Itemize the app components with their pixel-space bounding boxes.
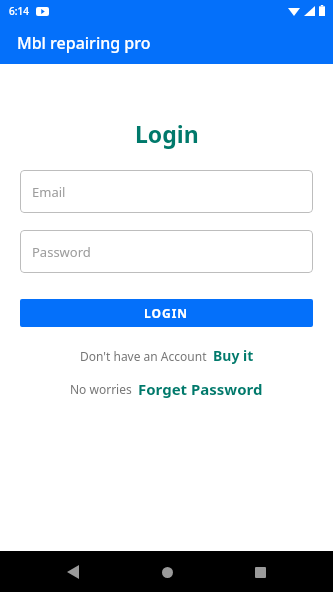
button[interactable]: Recent apps — [240, 552, 280, 592]
button[interactable]: No worries — [0, 379, 333, 399]
button[interactable]: Password — [20, 230, 313, 273]
staticText: Password — [32, 243, 91, 261]
button[interactable]: Home — [147, 552, 187, 592]
button[interactable]: Don't have an Account — [0, 346, 333, 365]
staticText: No worries — [70, 381, 132, 397]
button[interactable]: Email — [20, 170, 313, 213]
staticText: Email — [32, 183, 66, 201]
staticText: Buy it — [213, 346, 254, 365]
staticText: Mbl repairing pro — [17, 32, 151, 54]
staticText: 6:14 — [9, 4, 29, 18]
staticText: Forget Password — [138, 379, 263, 399]
button[interactable]: Back — [53, 552, 93, 592]
staticText: Login — [135, 118, 199, 149]
button[interactable]: LOGIN — [20, 299, 313, 327]
staticText: Don't have an Account — [80, 348, 207, 364]
staticText: LOGIN — [144, 305, 189, 321]
